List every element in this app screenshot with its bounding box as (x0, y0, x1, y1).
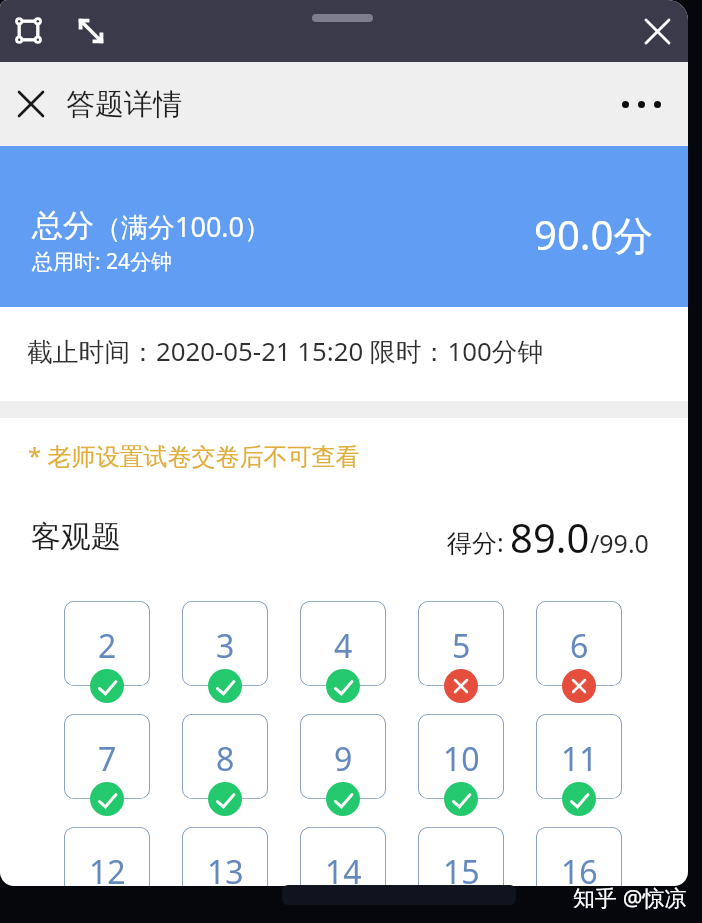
staticText: 7 (98, 737, 117, 781)
staticText: 10 (443, 737, 480, 781)
staticText: 客观题 (31, 518, 121, 556)
button[interactable]: 9 (300, 714, 386, 799)
staticText: 4 (334, 624, 353, 668)
button[interactable]: 10 (418, 714, 504, 799)
button[interactable]: Close (632, 6, 682, 56)
button[interactable]: 11 (536, 714, 622, 799)
staticText: 总用时: 24分钟 (32, 247, 173, 276)
staticText: 12 (89, 850, 126, 886)
button[interactable]: 14 (300, 827, 386, 886)
staticText: 15 (443, 850, 480, 886)
button[interactable]: 2 (64, 601, 150, 686)
staticText: 2 (98, 624, 117, 668)
staticText: 答题详情 (66, 86, 182, 123)
button[interactable]: 13 (182, 827, 268, 886)
button[interactable]: 6 (536, 601, 622, 686)
staticText: 5 (452, 624, 471, 668)
staticText: 16 (561, 850, 598, 886)
staticText: 14 (325, 850, 362, 886)
staticText: 90.0分 (534, 207, 654, 262)
staticText: 得分: (447, 525, 504, 559)
staticText: 截止时间：2020-05-21 15:20 限时：100分钟 (27, 333, 544, 368)
staticText: 9 (334, 737, 353, 781)
staticText: （满分100.0） (94, 208, 272, 245)
button[interactable]: Overlay button (282, 885, 516, 905)
staticText: * 老师设置试卷交卷后不可查看 (28, 439, 360, 472)
button[interactable]: 16 (536, 827, 622, 886)
button[interactable]: 12 (64, 827, 150, 886)
staticText: 11 (561, 737, 598, 781)
button[interactable]: Resize (64, 4, 118, 58)
button[interactable]: 7 (64, 714, 150, 799)
button[interactable]: 15 (418, 827, 504, 886)
staticText: 3 (216, 624, 235, 668)
button[interactable]: 5 (418, 601, 504, 686)
staticText: 知乎 @惊凉 (573, 882, 687, 912)
button[interactable]: Screenshot (1, 3, 55, 57)
staticText: 13 (207, 850, 244, 886)
button[interactable]: 8 (182, 714, 268, 799)
staticText: /99.0 (590, 526, 649, 560)
button[interactable]: 4 (300, 601, 386, 686)
staticText: 6 (570, 624, 589, 668)
button[interactable]: Close (6, 79, 56, 129)
button[interactable]: More options (613, 76, 669, 132)
button[interactable]: 3 (182, 601, 268, 686)
staticText: 89.0 (510, 510, 590, 564)
staticText: 总分 (32, 206, 94, 245)
staticText: 8 (216, 737, 235, 781)
